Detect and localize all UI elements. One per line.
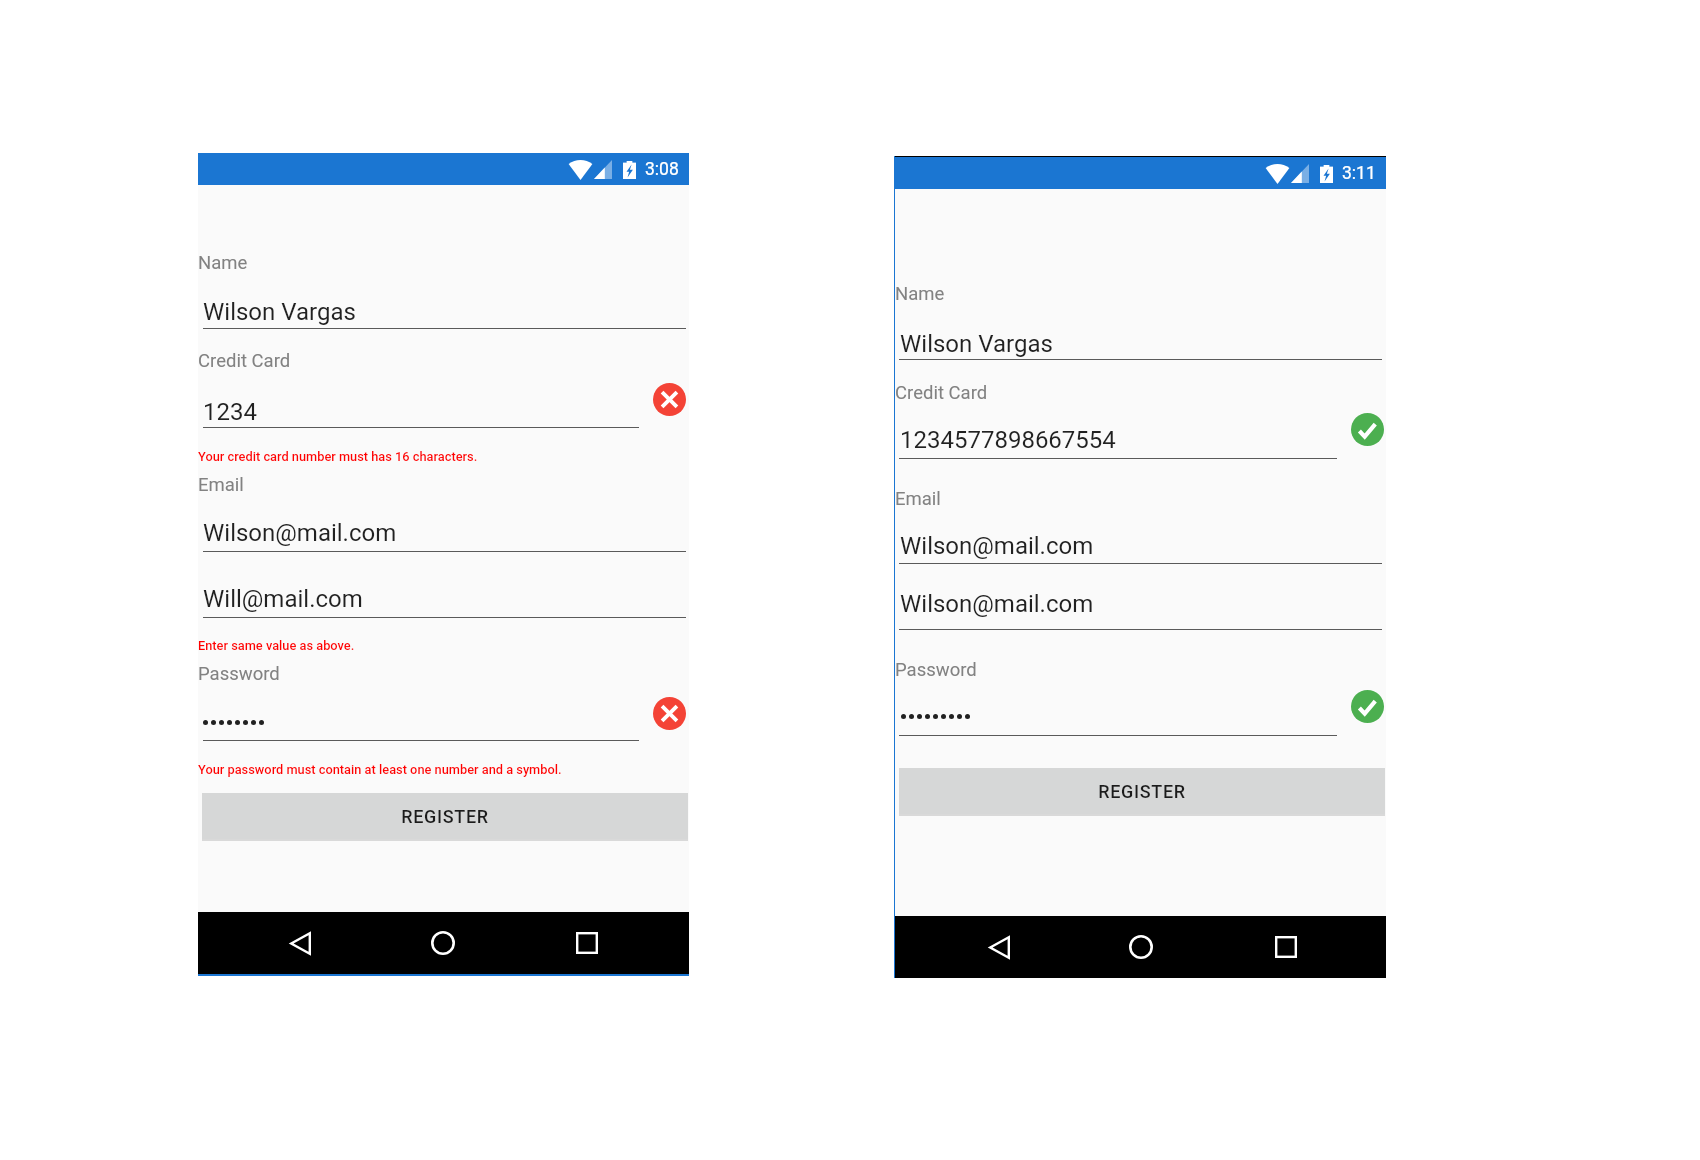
- button[interactable]: Invalid input: [653, 383, 686, 416]
- staticText: 3:11: [1342, 163, 1376, 184]
- button[interactable]: Valid input: [1351, 413, 1384, 446]
- staticText: Your credit card number must has 16 char…: [198, 449, 478, 464]
- button[interactable]: Wilson@mail.com: [900, 532, 1094, 560]
- staticText: Password: [895, 659, 977, 681]
- button[interactable]: Wilson@mail.com: [203, 519, 397, 547]
- button[interactable]: Invalid input: [653, 697, 686, 730]
- staticText: Password: [198, 663, 280, 685]
- staticText: Enter same value as above.: [198, 638, 355, 653]
- button[interactable]: REGISTER: [899, 768, 1385, 814]
- button[interactable]: Back: [276, 919, 324, 967]
- button[interactable]: REGISTER: [202, 793, 688, 839]
- staticText: Credit Card: [198, 350, 291, 372]
- button[interactable]: 1234: [203, 398, 257, 426]
- button[interactable]: Home: [419, 919, 467, 967]
- button[interactable]: Wilson Vargas: [900, 330, 1053, 358]
- staticText: 3:08: [645, 159, 679, 180]
- staticText: Email: [198, 474, 244, 496]
- button[interactable]: Recent apps: [563, 919, 611, 967]
- button[interactable]: Wilson Vargas: [203, 298, 356, 326]
- staticText: Your password must contain at least one …: [198, 762, 562, 777]
- button[interactable]: 1234577898667554: [900, 426, 1116, 454]
- staticText: REGISTER: [401, 806, 489, 827]
- staticText: Email: [895, 488, 941, 510]
- button[interactable]: Back: [975, 923, 1023, 971]
- staticText: Name: [198, 252, 248, 274]
- staticText: REGISTER: [1098, 781, 1186, 802]
- staticText: Credit Card: [895, 382, 988, 404]
- button[interactable]: Wilson@mail.com: [900, 590, 1094, 618]
- button[interactable]: Home: [1117, 923, 1165, 971]
- button[interactable]: Valid input: [1351, 690, 1384, 723]
- button[interactable]: Password: [203, 720, 267, 725]
- button[interactable]: Recent apps: [1262, 923, 1310, 971]
- button[interactable]: Password: [901, 714, 973, 719]
- button[interactable]: Will@mail.com: [203, 585, 363, 613]
- staticText: Name: [895, 283, 945, 305]
